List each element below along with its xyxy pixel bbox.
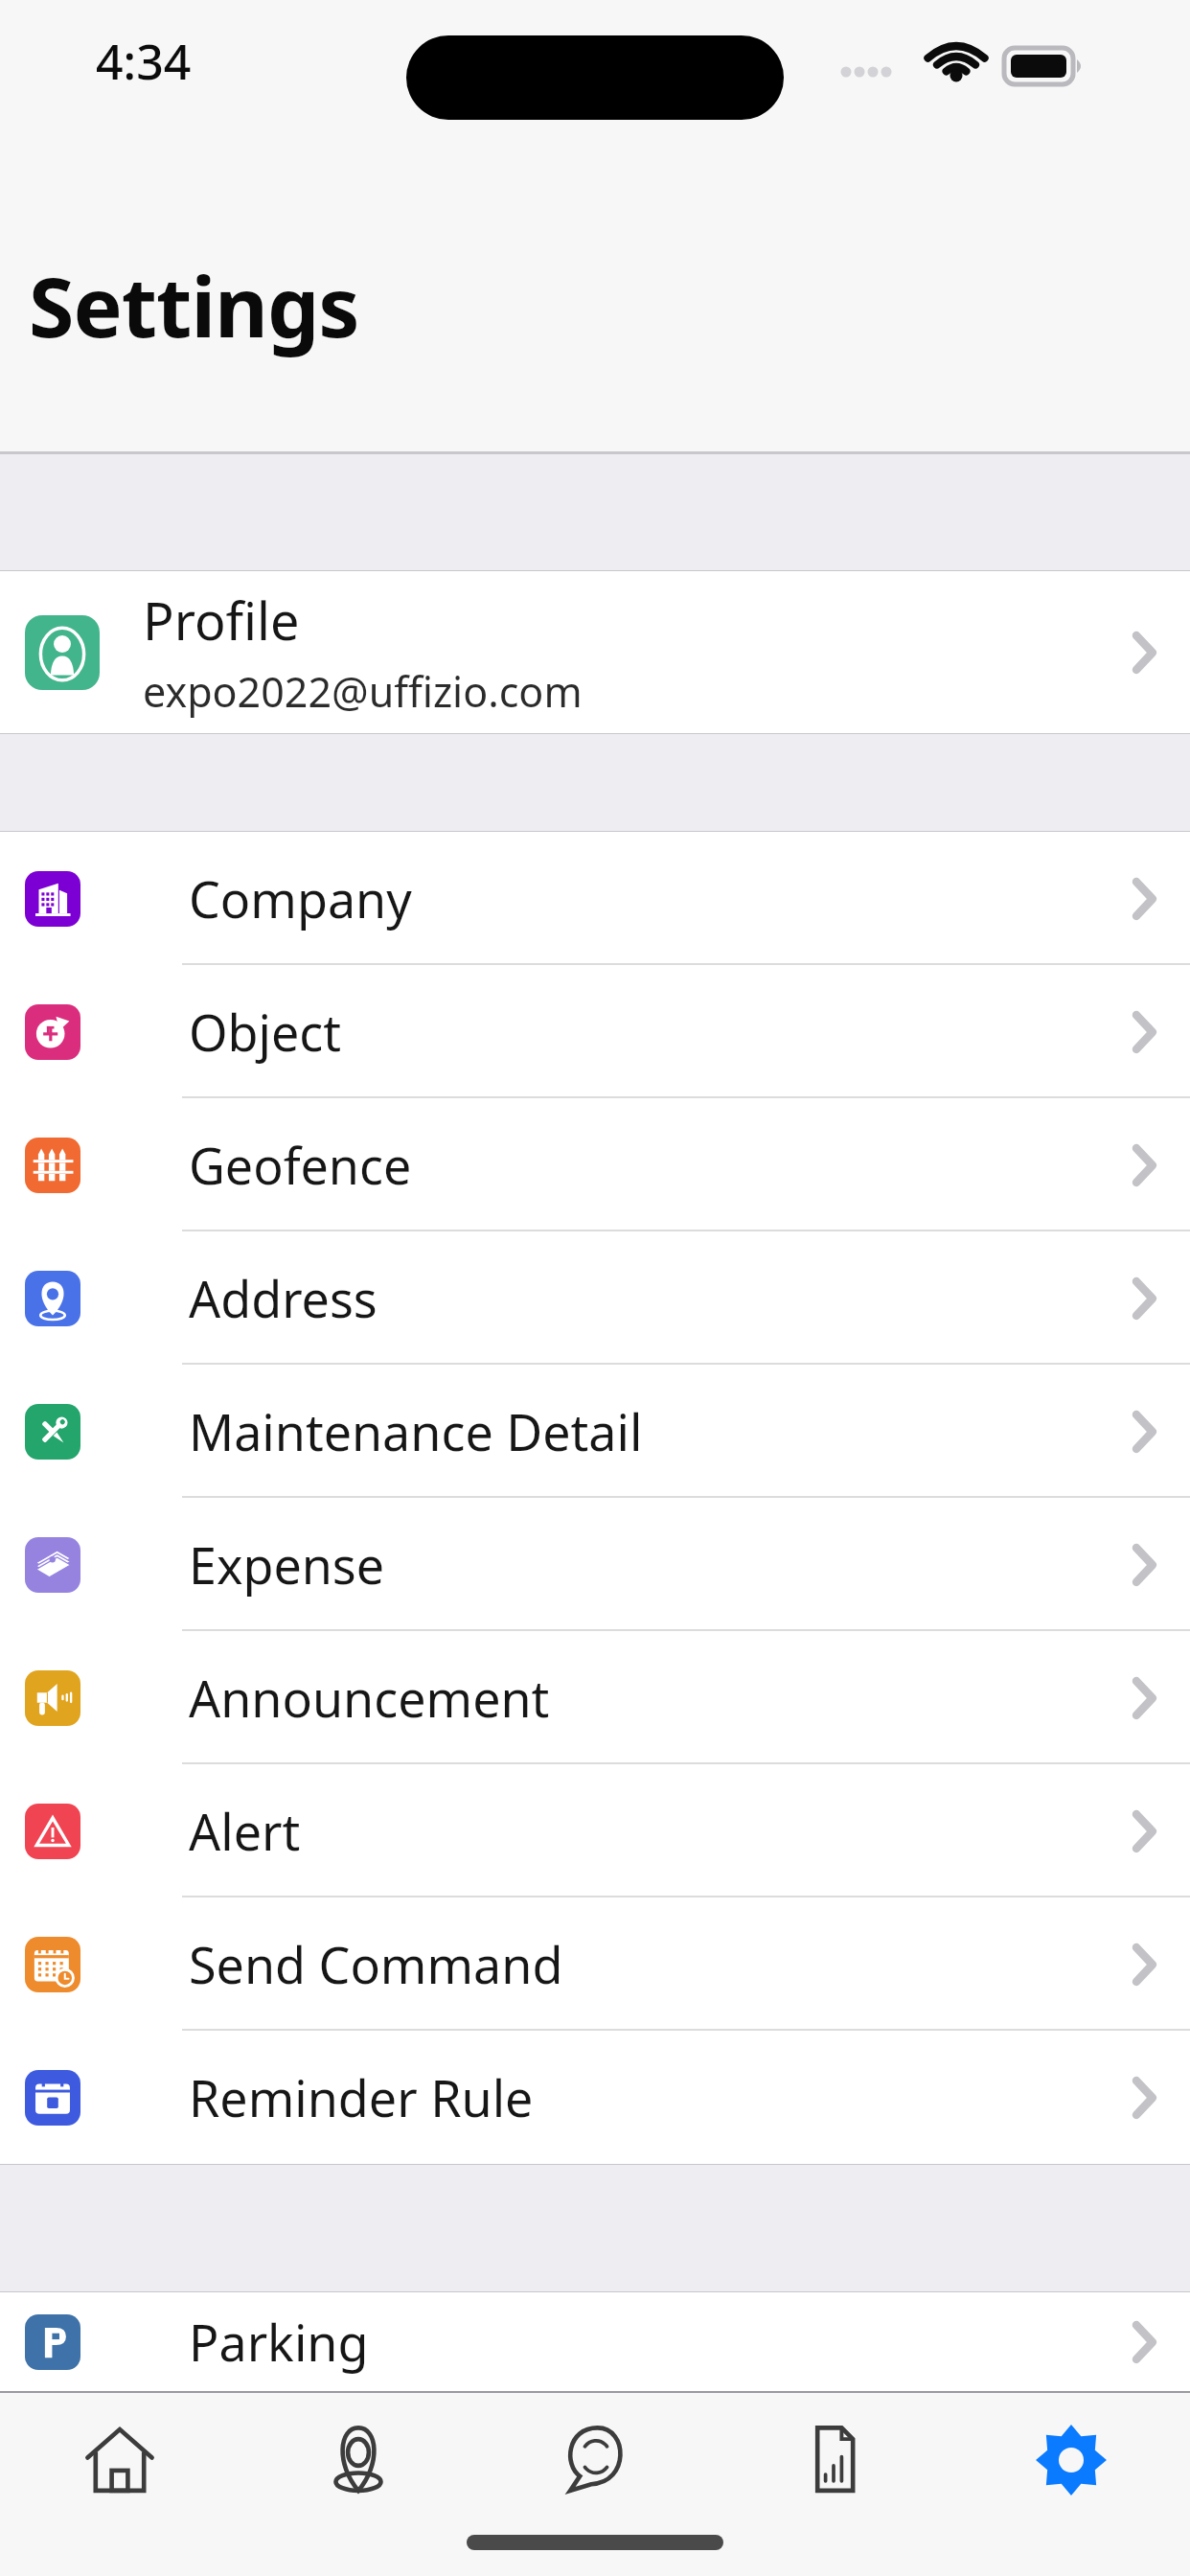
staticText: Settings bbox=[29, 249, 359, 361]
button[interactable]: Address bbox=[0, 1231, 1190, 1365]
staticText: Address bbox=[189, 1264, 1125, 1332]
button[interactable]: Maintenance Detail bbox=[0, 1365, 1190, 1498]
button[interactable]: Settings bbox=[952, 2393, 1190, 2527]
staticText: Profile bbox=[143, 585, 300, 655]
button[interactable]: Object bbox=[0, 965, 1190, 1098]
button[interactable]: Tracking bbox=[239, 2393, 477, 2527]
button[interactable]: Expense bbox=[0, 1498, 1190, 1631]
button[interactable]: Reports bbox=[715, 2393, 952, 2527]
button[interactable]: Alert bbox=[0, 1764, 1190, 1897]
staticText: Company bbox=[189, 864, 1125, 932]
button[interactable]: Chat bbox=[477, 2393, 715, 2527]
staticText: Alert bbox=[189, 1797, 1125, 1865]
staticText: Parking bbox=[189, 2308, 1125, 2376]
staticText: Object bbox=[189, 998, 1125, 1066]
button[interactable]: Reminder Rule bbox=[0, 2031, 1190, 2164]
staticText: Geofence bbox=[189, 1131, 1125, 1199]
button[interactable]: Geofence bbox=[0, 1098, 1190, 1231]
button[interactable]: Company bbox=[0, 832, 1190, 965]
staticText: Expense bbox=[189, 1530, 1125, 1598]
staticText: Announcement bbox=[189, 1664, 1125, 1732]
staticText: Reminder Rule bbox=[189, 2063, 1125, 2131]
button[interactable]: Send Command bbox=[0, 1897, 1190, 2031]
staticText: expo2022@uffizio.com bbox=[143, 663, 583, 720]
staticText: Maintenance Detail bbox=[189, 1397, 1125, 1465]
staticText: Send Command bbox=[189, 1930, 1125, 1998]
staticText: 4:34 bbox=[96, 29, 192, 94]
button[interactable]: Profile bbox=[0, 571, 1190, 733]
button[interactable]: Home bbox=[0, 2393, 239, 2527]
button[interactable]: Announcement bbox=[0, 1631, 1190, 1764]
button[interactable]: Parking bbox=[0, 2292, 1190, 2391]
